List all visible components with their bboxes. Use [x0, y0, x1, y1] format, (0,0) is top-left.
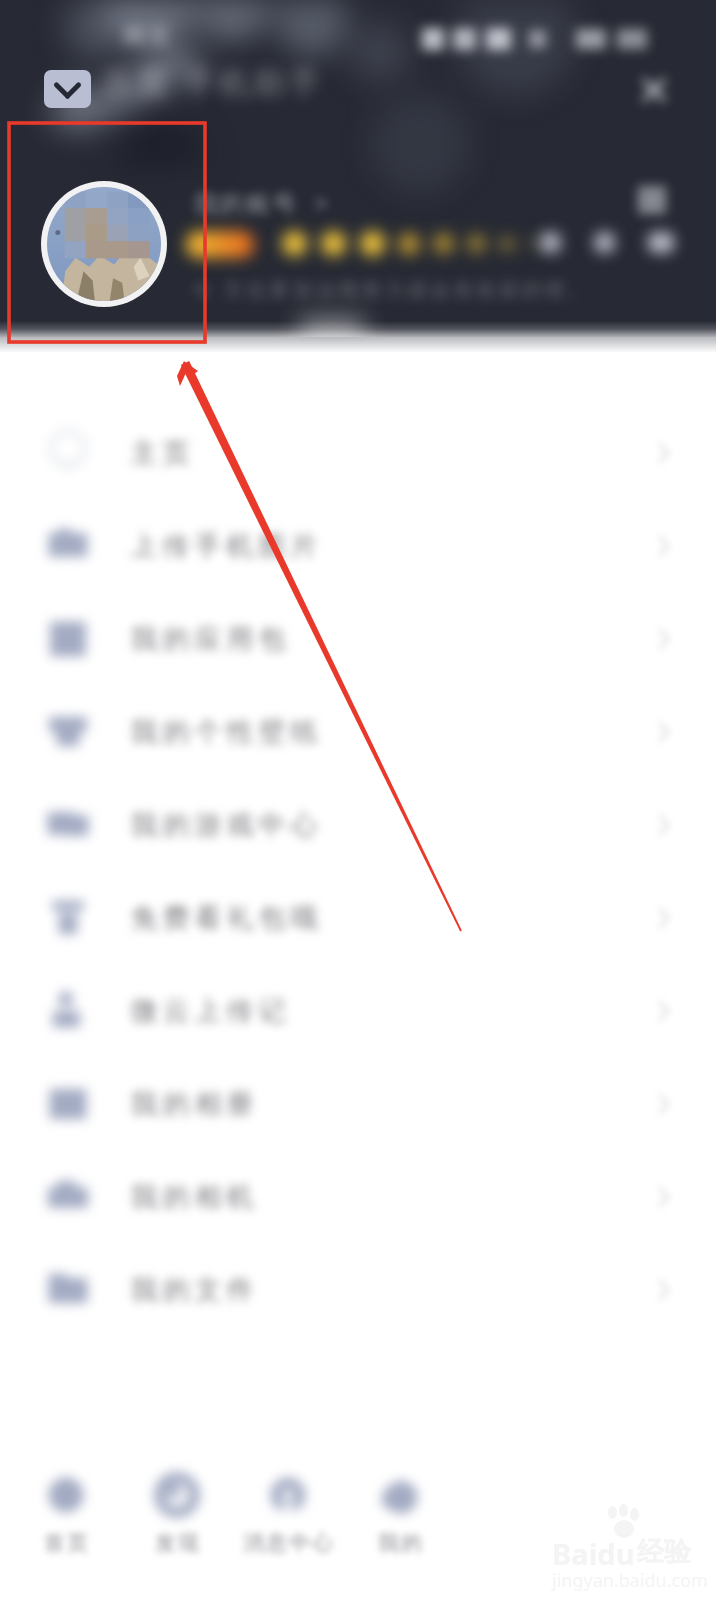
button[interactable]: 我的相机: [0, 1150, 716, 1243]
staticText: Baidu: [552, 1534, 635, 1573]
button[interactable]: 我的应用包: [0, 592, 716, 685]
staticText: 我的游戏中心: [128, 808, 320, 842]
staticText: 我的账号 >: [194, 186, 331, 219]
button[interactable]: 消息中心: [233, 1466, 343, 1576]
button[interactable]: 首页: [11, 1466, 121, 1576]
button[interactable]: 发现: [122, 1466, 232, 1576]
staticText: 我的相册: [128, 1087, 256, 1121]
staticText: 我的个性壁纸: [128, 715, 320, 749]
button[interactable]: Collapse: [44, 70, 91, 108]
staticText: 微云上传记: [128, 994, 288, 1028]
button[interactable]: Scan code: [628, 176, 676, 224]
button[interactable]: Close: [632, 68, 676, 112]
staticText: 网页: [122, 23, 172, 51]
staticText: 首页: [43, 1530, 89, 1556]
button[interactable]: 我的: [345, 1466, 455, 1576]
staticText: 发现: [154, 1530, 200, 1556]
button[interactable]: Profile photo: [47, 187, 161, 301]
staticText: 百度 手机助手: [102, 60, 325, 102]
button[interactable]: 免费看礼包哦: [0, 871, 716, 964]
staticText: 免费看礼包哦: [128, 901, 320, 935]
button[interactable]: 主页: [0, 406, 716, 499]
button[interactable]: 微云上传记: [0, 964, 716, 1057]
staticText: 经验: [637, 1535, 691, 1569]
staticText: 我的相机: [128, 1180, 256, 1214]
staticText: 主页: [128, 436, 192, 470]
staticText: jingyan.baidu.com: [552, 1568, 708, 1593]
button[interactable]: 我的文件: [0, 1243, 716, 1336]
staticText: 我的文件: [128, 1273, 256, 1307]
staticText: 我的应用包: [128, 622, 288, 656]
staticText: 今 天也要加油哦努力就会有收获的呀。: [192, 276, 592, 303]
button[interactable]: 上传手机图片: [0, 499, 716, 592]
button[interactable]: 我的相册: [0, 1057, 716, 1150]
button[interactable]: 我的游戏中心: [0, 778, 716, 871]
button[interactable]: 我的个性壁纸: [0, 685, 716, 778]
staticText: 消息中心: [242, 1530, 334, 1556]
staticText: 上传手机图片: [128, 529, 320, 563]
staticText: 我的: [377, 1530, 423, 1556]
